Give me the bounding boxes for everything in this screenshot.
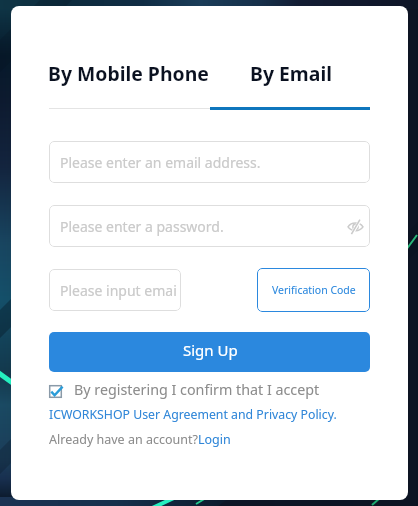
staticText: Please enter a password. [60, 217, 224, 236]
button[interactable]: By registering I confirm that I accept [49, 379, 320, 399]
staticText: ICWORKSHOP User Agreement and Privacy Po… [49, 406, 337, 423]
button[interactable]: Please enter an email address. [49, 141, 370, 183]
button[interactable]: By Mobile Phone [42, 51, 214, 95]
button[interactable]: Login [198, 431, 231, 448]
staticText: By registering I confirm that I accept [74, 380, 320, 399]
staticText: Please enter an email address. [60, 153, 261, 172]
staticText: Please input emai [60, 281, 177, 300]
button[interactable]: Verification Code [257, 268, 370, 312]
staticText: Already have an account? [49, 431, 198, 448]
button[interactable]: Sign Up [49, 332, 370, 372]
staticText: Login [198, 431, 231, 448]
staticText: Sign Up [183, 340, 238, 360]
staticText: By Mobile Phone [48, 60, 209, 86]
button[interactable]: ICWORKSHOP User Agreement and Privacy Po… [49, 406, 337, 426]
staticText: Verification Code [272, 283, 356, 297]
button[interactable]: Please input emai [49, 269, 181, 311]
button[interactable]: Show password [343, 214, 367, 238]
button[interactable]: Please enter a password. [49, 205, 370, 247]
button[interactable]: By Email [218, 51, 363, 95]
staticText: By Email [250, 60, 332, 86]
